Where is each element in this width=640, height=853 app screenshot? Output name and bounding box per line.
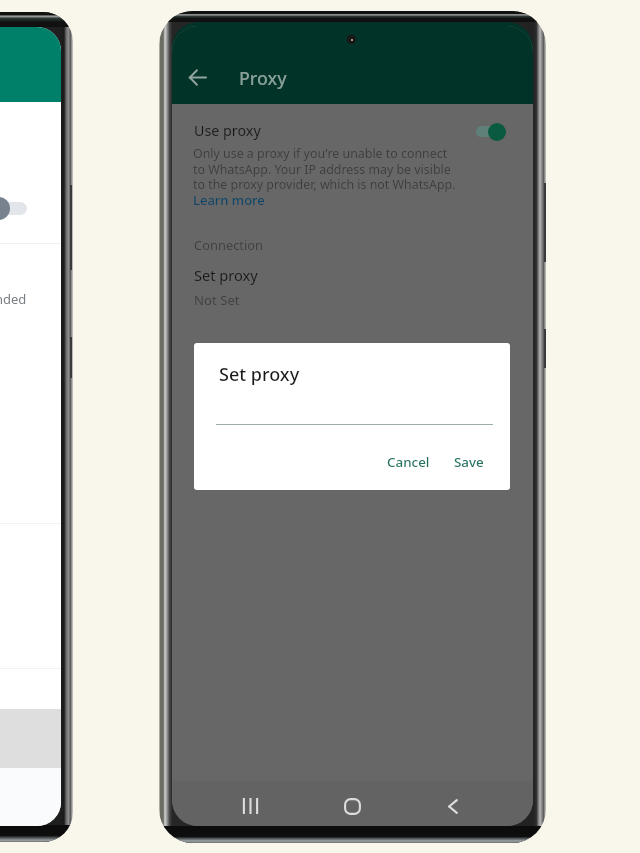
button[interactable]: Home xyxy=(334,788,370,824)
button[interactable]: Learn more xyxy=(193,187,271,213)
button[interactable]: Back xyxy=(180,60,215,95)
staticText: Proxy xyxy=(239,66,287,90)
staticText: Use proxy xyxy=(194,121,261,140)
button[interactable]: Use proxy xyxy=(172,113,533,185)
staticText: Only use a proxy if you're unable to con… xyxy=(193,145,456,193)
staticText: nded xyxy=(0,290,27,308)
button[interactable]: Recent apps xyxy=(233,788,269,824)
staticText: Connection xyxy=(194,236,264,254)
staticText: Set proxy xyxy=(219,362,300,387)
button[interactable]: Use proxy switch, on xyxy=(469,117,519,146)
button[interactable]: Back xyxy=(435,788,471,824)
button[interactable]: Save xyxy=(446,447,492,477)
staticText: Not Set xyxy=(194,291,240,309)
button[interactable]: Set proxy xyxy=(172,263,533,301)
button[interactable]: Cancel xyxy=(379,447,438,477)
staticText: Set proxy xyxy=(194,265,258,285)
